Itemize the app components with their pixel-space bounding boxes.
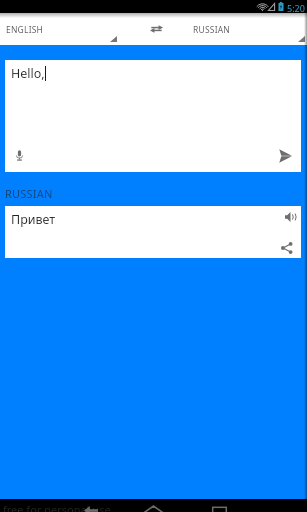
staticText: RUSSIAN: [193, 24, 231, 36]
button[interactable]: Back: [82, 502, 100, 512]
staticText: RUSSIAN: [5, 186, 53, 201]
button[interactable]: Recents: [209, 502, 230, 512]
staticText: ENGLISH: [6, 24, 44, 36]
button[interactable]: ENGLISH: [0, 13, 118, 45]
button[interactable]: Swap languages: [140, 13, 166, 45]
staticText: free for personal use: [3, 502, 111, 512]
button[interactable]: Listen: [281, 208, 298, 225]
button[interactable]: RUSSIAN: [187, 13, 307, 45]
staticText: 5:20: [287, 2, 305, 14]
button[interactable]: Home: [142, 502, 165, 512]
button[interactable]: Translate: [275, 145, 296, 166]
button[interactable]: Share: [279, 240, 295, 256]
button[interactable]: Voice input: [10, 145, 28, 165]
staticText: Привет: [11, 211, 56, 228]
staticText: Hello,: [11, 65, 45, 82]
